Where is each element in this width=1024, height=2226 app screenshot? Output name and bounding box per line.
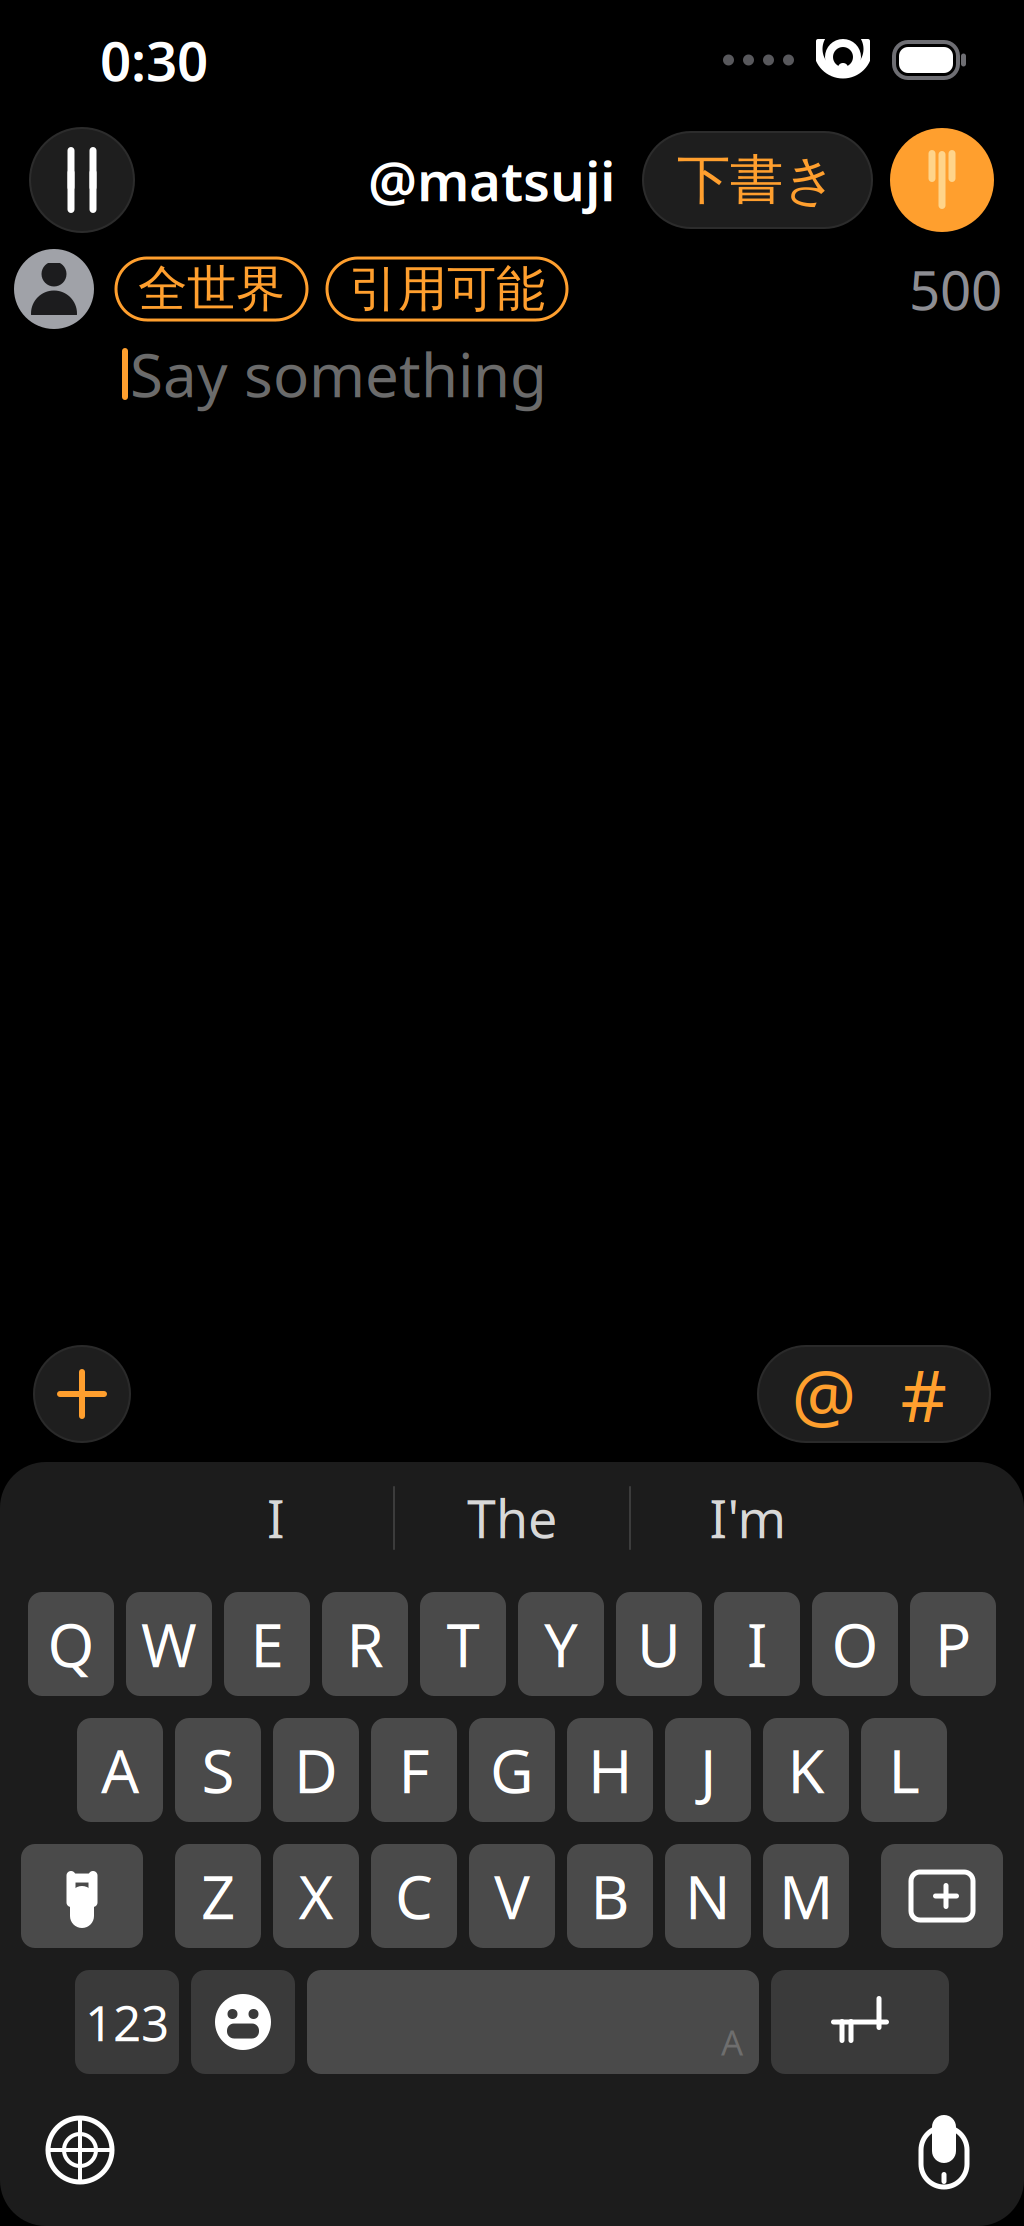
- button[interactable]: I: [714, 1592, 800, 1696]
- staticText: 0:30: [100, 24, 208, 96]
- button[interactable]: Hashtag: [874, 1346, 974, 1442]
- button[interactable]: C: [371, 1844, 457, 1948]
- staticText: V: [494, 1856, 530, 1936]
- staticText: X: [298, 1856, 333, 1936]
- staticText: B: [590, 1856, 629, 1936]
- button[interactable]: R: [322, 1592, 408, 1696]
- button[interactable]: O: [812, 1592, 898, 1696]
- staticText: H: [588, 1730, 632, 1810]
- staticText: L: [888, 1730, 919, 1810]
- button[interactable]: Z: [175, 1844, 261, 1948]
- button[interactable]: Emoji: [191, 1970, 295, 2074]
- staticText: N: [685, 1856, 731, 1936]
- button[interactable]: P: [910, 1592, 996, 1696]
- button[interactable]: U: [616, 1592, 702, 1696]
- staticText: R: [346, 1604, 383, 1684]
- staticText: P: [935, 1604, 971, 1684]
- button[interactable]: 下書き: [643, 132, 872, 228]
- button[interactable]: J: [665, 1718, 751, 1822]
- staticText: 引用可能: [349, 259, 545, 319]
- button[interactable]: S: [175, 1718, 261, 1822]
- staticText: A: [101, 1730, 139, 1810]
- staticText: F: [398, 1730, 429, 1810]
- staticText: I: [267, 1483, 285, 1553]
- staticText: T: [446, 1604, 479, 1684]
- staticText: E: [250, 1604, 283, 1684]
- staticText: @matsuji: [368, 144, 615, 216]
- button[interactable]: 全世界: [116, 258, 307, 320]
- staticText: 500: [909, 253, 1002, 325]
- staticText: W: [141, 1604, 197, 1684]
- staticText: S: [201, 1730, 234, 1810]
- button[interactable]: X: [273, 1844, 359, 1948]
- staticText: Z: [201, 1856, 235, 1936]
- staticText: J: [700, 1730, 716, 1810]
- button[interactable]: D: [273, 1718, 359, 1822]
- button[interactable]: Mention: [774, 1346, 874, 1442]
- staticText: C: [395, 1856, 433, 1936]
- staticText: M: [779, 1856, 833, 1936]
- staticText: K: [787, 1730, 824, 1810]
- staticText: 全世界: [138, 259, 285, 319]
- button[interactable]: F: [371, 1718, 457, 1822]
- button[interactable]: B: [567, 1844, 653, 1948]
- button[interactable]: 123: [75, 1970, 179, 2074]
- button[interactable]: Shift: [21, 1844, 143, 1948]
- button[interactable]: 引用可能: [327, 258, 567, 320]
- button[interactable]: N: [665, 1844, 751, 1948]
- staticText: @: [791, 1346, 856, 1442]
- button[interactable]: Delete: [881, 1844, 1003, 1948]
- staticText: D: [294, 1730, 338, 1810]
- staticText: 123: [85, 1989, 169, 2055]
- button[interactable]: I: [159, 1472, 393, 1564]
- button[interactable]: T: [420, 1592, 506, 1696]
- button[interactable]: L: [861, 1718, 947, 1822]
- staticText: G: [490, 1730, 534, 1810]
- button[interactable]: I'm: [631, 1472, 865, 1564]
- button[interactable]: space: [307, 1970, 759, 2074]
- button[interactable]: Close: [30, 128, 134, 232]
- staticText: A: [721, 2019, 743, 2065]
- staticText: Y: [544, 1604, 578, 1684]
- button[interactable]: K: [763, 1718, 849, 1822]
- button[interactable]: M: [763, 1844, 849, 1948]
- staticText: I'm: [709, 1483, 786, 1553]
- button[interactable]: H: [567, 1718, 653, 1822]
- button[interactable]: Post: [890, 128, 994, 232]
- button[interactable]: Add attachment: [34, 1346, 130, 1442]
- button[interactable]: V: [469, 1844, 555, 1948]
- button[interactable]: Return: [771, 1970, 949, 2074]
- button[interactable]: E: [224, 1592, 310, 1696]
- staticText: I: [747, 1604, 767, 1684]
- button[interactable]: W: [126, 1592, 212, 1696]
- staticText: U: [637, 1604, 681, 1684]
- button[interactable]: The: [395, 1472, 629, 1564]
- button[interactable]: Next keyboard: [24, 2094, 136, 2206]
- staticText: The: [467, 1483, 557, 1553]
- staticText: O: [831, 1604, 878, 1684]
- button[interactable]: G: [469, 1718, 555, 1822]
- staticText: Say something: [130, 334, 547, 414]
- button[interactable]: A: [77, 1718, 163, 1822]
- button[interactable]: Y: [518, 1592, 604, 1696]
- button[interactable]: Dictation: [888, 2094, 1000, 2206]
- staticText: Q: [47, 1604, 94, 1684]
- staticText: #: [900, 1346, 947, 1442]
- staticText: 下書き: [677, 147, 838, 213]
- button[interactable]: Q: [28, 1592, 114, 1696]
